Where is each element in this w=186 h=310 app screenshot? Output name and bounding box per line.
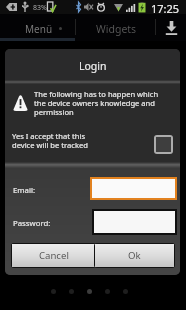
button[interactable]: Yes I accept that this device will be tr… (5, 128, 180, 161)
button[interactable]: Menü (0, 14, 75, 41)
button[interactable]: Ok (95, 244, 174, 267)
staticText: 83% (33, 3, 47, 13)
staticText: Cancel (39, 249, 69, 262)
staticText: Password: (13, 218, 51, 229)
button[interactable]: Download (156, 14, 186, 41)
button[interactable]: Widgets (76, 14, 154, 41)
staticText: Menü (25, 22, 53, 36)
staticText: The following has to happen which the de… (34, 89, 159, 117)
staticText: Ok (128, 249, 141, 262)
staticText: Widgets (96, 22, 137, 36)
staticText: 17:25 (151, 1, 180, 15)
button[interactable]: Cancel (12, 244, 95, 267)
staticText: Login (79, 59, 107, 73)
staticText: Email: (13, 185, 36, 196)
staticText: Yes I accept that this device will be tr… (12, 131, 88, 150)
